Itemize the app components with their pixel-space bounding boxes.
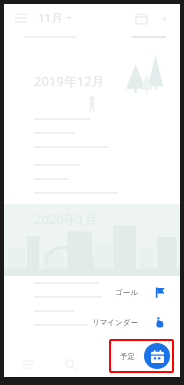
button[interactable] <box>4 112 180 126</box>
button[interactable]: Schedule <box>20 356 36 372</box>
button[interactable]: Today <box>132 9 150 27</box>
staticText: リマインダー <box>92 318 138 327</box>
button[interactable]: More options <box>156 10 172 26</box>
button[interactable] <box>4 140 180 154</box>
button[interactable]: Menu <box>12 9 30 27</box>
button[interactable] <box>4 158 180 172</box>
staticText: 2020年1月 <box>34 210 98 228</box>
button[interactable]: 11月 <box>38 10 72 26</box>
button[interactable] <box>4 318 180 332</box>
button[interactable]: Search <box>62 356 78 372</box>
staticText: ゴール <box>115 288 138 297</box>
button[interactable]: ゴール <box>106 280 174 304</box>
button[interactable] <box>4 290 180 304</box>
staticText: 11月 <box>38 10 63 26</box>
button[interactable] <box>4 186 180 200</box>
button[interactable] <box>4 276 180 290</box>
staticText: 2019年12月 <box>34 72 105 90</box>
button[interactable]: 予定 <box>111 341 172 371</box>
staticText: 予定 <box>120 352 135 361</box>
button[interactable]: リマインダー <box>83 310 174 334</box>
button[interactable] <box>4 304 180 318</box>
